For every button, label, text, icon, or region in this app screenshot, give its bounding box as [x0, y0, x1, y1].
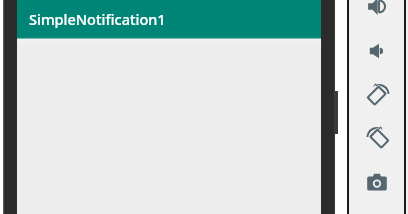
button[interactable]: Volume down: [367, 41, 387, 61]
button[interactable]: Take screenshot: [365, 170, 389, 194]
button[interactable]: Rotate left: [365, 83, 389, 107]
staticText: SimpleNotification1: [29, 9, 166, 29]
button[interactable]: Rotate right: [367, 126, 391, 150]
button[interactable]: Volume up: [367, 0, 388, 17]
